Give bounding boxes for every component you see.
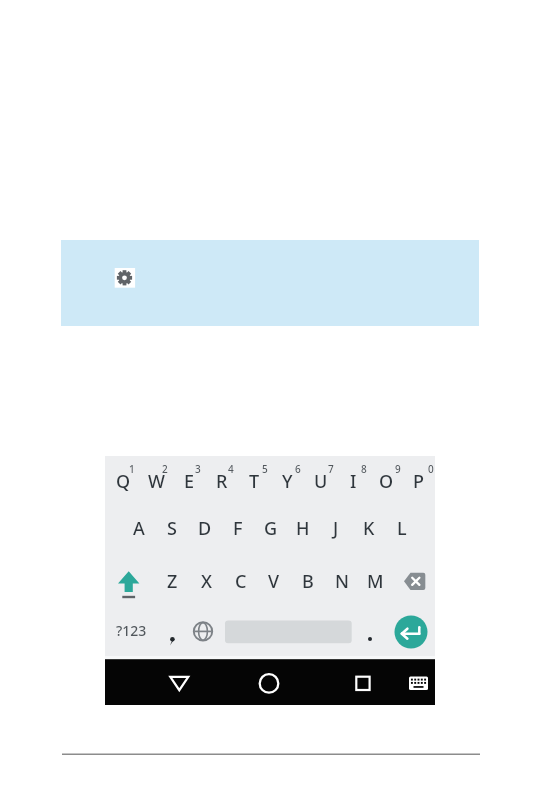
staticText: M xyxy=(367,569,384,594)
staticText: T xyxy=(249,469,260,494)
button[interactable]: 3 xyxy=(181,461,214,477)
staticText: Z xyxy=(167,569,178,594)
staticText: R xyxy=(216,469,228,494)
staticText: 0 xyxy=(428,462,434,476)
button[interactable]: Z xyxy=(156,565,189,597)
button[interactable]: G xyxy=(254,512,287,544)
staticText: 8 xyxy=(361,462,367,476)
staticText: A xyxy=(133,516,145,541)
staticText: W xyxy=(148,469,165,494)
button[interactable]: W xyxy=(140,465,173,497)
button[interactable]: D xyxy=(188,512,221,544)
button[interactable]: J xyxy=(319,512,352,544)
button[interactable]: 8 xyxy=(347,461,380,477)
button[interactable]: 0 xyxy=(414,461,447,477)
button[interactable]: T xyxy=(238,465,271,497)
staticText: E xyxy=(184,469,195,494)
staticText: L xyxy=(397,516,407,541)
button[interactable]: B xyxy=(291,565,324,597)
staticText: K xyxy=(363,516,375,541)
button[interactable]: C xyxy=(224,565,257,597)
staticText: J xyxy=(333,516,339,541)
staticText: H xyxy=(296,516,310,541)
staticText: Q xyxy=(116,469,131,494)
button[interactable]: F xyxy=(221,512,254,544)
button[interactable]: 4 xyxy=(214,461,247,477)
button[interactable]: O xyxy=(370,465,403,497)
staticText: O xyxy=(379,469,394,494)
staticText: 3 xyxy=(195,462,201,476)
staticText: C xyxy=(235,569,247,594)
staticText: G xyxy=(264,516,278,541)
staticText: N xyxy=(335,569,349,594)
button[interactable]: L xyxy=(385,512,418,544)
button[interactable]: ?123 xyxy=(106,614,156,646)
staticText: V xyxy=(268,569,280,594)
staticText: 7 xyxy=(328,462,334,476)
staticText: ?123 xyxy=(116,621,147,640)
staticText: 9 xyxy=(395,462,401,476)
button[interactable]: K xyxy=(352,512,385,544)
staticText: 6 xyxy=(295,462,301,476)
button[interactable]: I xyxy=(337,465,370,497)
button[interactable]: H xyxy=(286,512,319,544)
button[interactable]: 9 xyxy=(381,461,414,477)
staticText: Y xyxy=(282,469,293,494)
button[interactable]: 2 xyxy=(148,461,181,477)
staticText: X xyxy=(201,569,212,594)
button[interactable]: 1 xyxy=(115,461,148,477)
button[interactable]: P xyxy=(402,465,435,497)
button[interactable]: 7 xyxy=(314,461,347,477)
staticText: P xyxy=(413,469,424,494)
button[interactable]: 5 xyxy=(248,461,281,477)
button[interactable]: Y xyxy=(271,465,304,497)
button[interactable]: S xyxy=(155,512,188,544)
button[interactable]: X xyxy=(190,565,223,597)
button[interactable]: N xyxy=(325,565,358,597)
button[interactable] xyxy=(105,659,435,705)
button[interactable]: Q xyxy=(107,465,140,497)
button[interactable]: M xyxy=(359,565,392,597)
staticText: I xyxy=(350,469,357,494)
button[interactable]: A xyxy=(122,512,155,544)
staticText: 1 xyxy=(129,462,135,476)
button[interactable]: U xyxy=(304,465,337,497)
button[interactable]: E xyxy=(173,465,206,497)
staticText: B xyxy=(302,569,314,594)
staticText: S xyxy=(167,516,177,541)
button[interactable]: R xyxy=(205,465,238,497)
staticText: 2 xyxy=(162,462,168,476)
staticText: 5 xyxy=(262,462,268,476)
staticText: 4 xyxy=(228,462,234,476)
button[interactable]: V xyxy=(257,565,290,597)
staticText: D xyxy=(198,516,212,541)
staticText: F xyxy=(233,516,243,541)
button[interactable]: 6 xyxy=(281,461,314,477)
staticText: U xyxy=(314,469,328,494)
